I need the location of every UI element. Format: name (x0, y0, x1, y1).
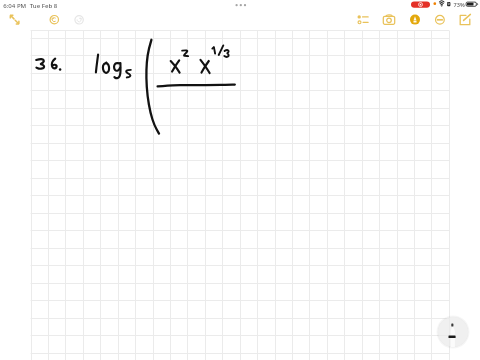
button[interactable]: Pen tool (406, 11, 425, 29)
button[interactable]: Redo (70, 11, 89, 29)
button[interactable]: Undo (45, 11, 64, 29)
button[interactable]: New note (456, 11, 475, 29)
button[interactable]: Exit full screen (6, 11, 24, 29)
button[interactable]: Page navigator (438, 317, 468, 347)
button[interactable]: Insert photo (380, 11, 399, 29)
button[interactable]: Pen settings (355, 11, 373, 29)
button[interactable]: Eraser tool (431, 11, 449, 29)
button[interactable]: More options (230, 1, 248, 10)
